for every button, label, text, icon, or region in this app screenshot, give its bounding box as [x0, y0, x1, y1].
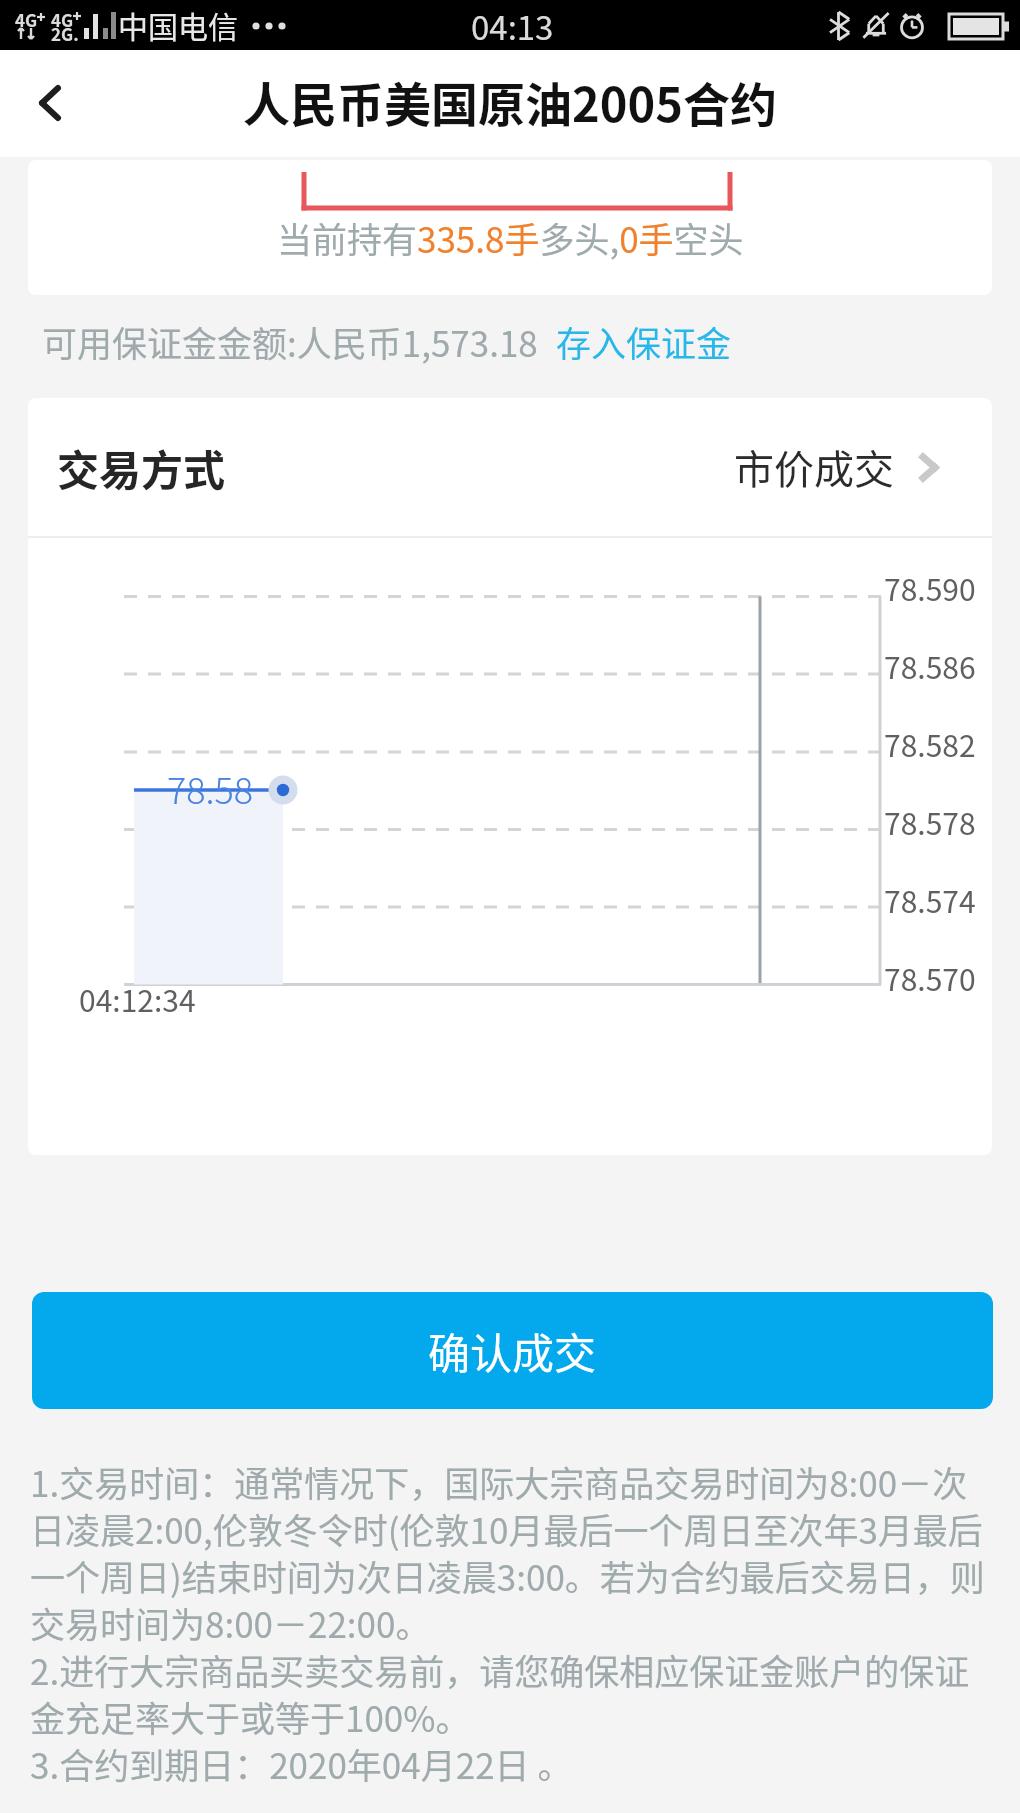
staticText: 78.582 [884, 722, 976, 765]
staticText: 中国电信 [118, 3, 238, 46]
staticText: 确认成交 [428, 1320, 597, 1381]
staticText: 2G. [51, 21, 79, 46]
staticText: 78.570 [884, 956, 976, 999]
staticText: 可用保证金金额:人民币1,573.18 [42, 316, 538, 367]
staticText: 当前持有335.8手多头,0手空头 [277, 212, 744, 263]
staticText: 人民币美国原油2005合约 [243, 67, 777, 135]
staticText: 交易方式 [57, 437, 226, 498]
button[interactable]: 确认成交 [32, 1292, 993, 1409]
staticText: 04:12:34 [79, 977, 196, 1020]
staticText: 存入保证金 [556, 316, 732, 367]
button[interactable]: Back [6, 68, 76, 138]
staticText: 78.578 [884, 800, 976, 843]
button[interactable]: 交易方式 [28, 398, 992, 536]
staticText: 78.590 [884, 566, 976, 609]
staticText: 4G [15, 7, 38, 32]
staticText: 市价成交 [734, 438, 894, 496]
staticText: 1.交易时间：通常情况下，国际大宗商品交易时间为8:00－次日凌晨2:00,伦敦… [30, 1456, 988, 1789]
staticText: 04:13 [471, 2, 554, 50]
button[interactable]: 存入保证金 [556, 316, 732, 367]
staticText: 78.574 [884, 878, 976, 921]
staticText: 4G [51, 7, 74, 32]
staticText: 78.58 [167, 762, 254, 814]
staticText: 78.586 [884, 644, 976, 687]
